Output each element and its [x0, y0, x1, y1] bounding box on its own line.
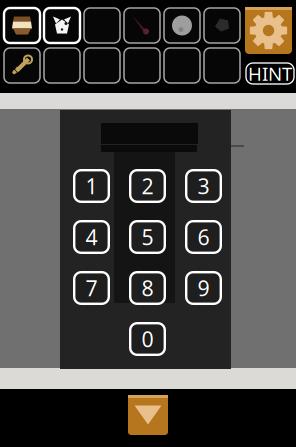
button[interactable]: Empty inventory slot: [44, 48, 80, 83]
button[interactable]: 5: [129, 220, 166, 254]
button[interactable]: 8: [129, 271, 166, 305]
staticText: 0: [141, 325, 153, 353]
button[interactable]: Empty inventory slot: [204, 48, 240, 83]
button[interactable]: Stone: [164, 8, 200, 43]
staticText: 1: [85, 172, 97, 200]
button[interactable]: Dark stone: [204, 8, 240, 43]
button[interactable]: Bread: [4, 8, 40, 43]
staticText: 4: [85, 223, 97, 251]
button[interactable]: 0: [129, 322, 166, 356]
button[interactable]: Go back: [128, 395, 168, 435]
button[interactable]: Empty inventory slot: [164, 48, 200, 83]
staticText: 2: [141, 172, 153, 200]
button[interactable]: Empty inventory slot: [124, 48, 160, 83]
staticText: 7: [85, 274, 97, 302]
staticText: 3: [197, 172, 209, 200]
staticText: 8: [141, 274, 153, 302]
button[interactable]: 4: [73, 220, 110, 254]
staticText: HINT: [248, 61, 292, 86]
button[interactable]: Empty inventory slot: [84, 8, 120, 43]
button[interactable]: Key: [4, 48, 40, 83]
button[interactable]: 6: [185, 220, 222, 254]
button[interactable]: Settings: [245, 7, 292, 54]
staticText: 9: [197, 274, 209, 302]
button[interactable]: 7: [73, 271, 110, 305]
button[interactable]: Needle: [124, 8, 160, 43]
button[interactable]: HINT: [246, 63, 294, 84]
button[interactable]: Mouse: [44, 8, 80, 43]
button[interactable]: Empty inventory slot: [84, 48, 120, 83]
button[interactable]: 1: [73, 169, 110, 203]
button[interactable]: 2: [129, 169, 166, 203]
staticText: 6: [197, 223, 209, 251]
button[interactable]: 9: [185, 271, 222, 305]
staticText: 5: [141, 223, 153, 251]
button[interactable]: 3: [185, 169, 222, 203]
